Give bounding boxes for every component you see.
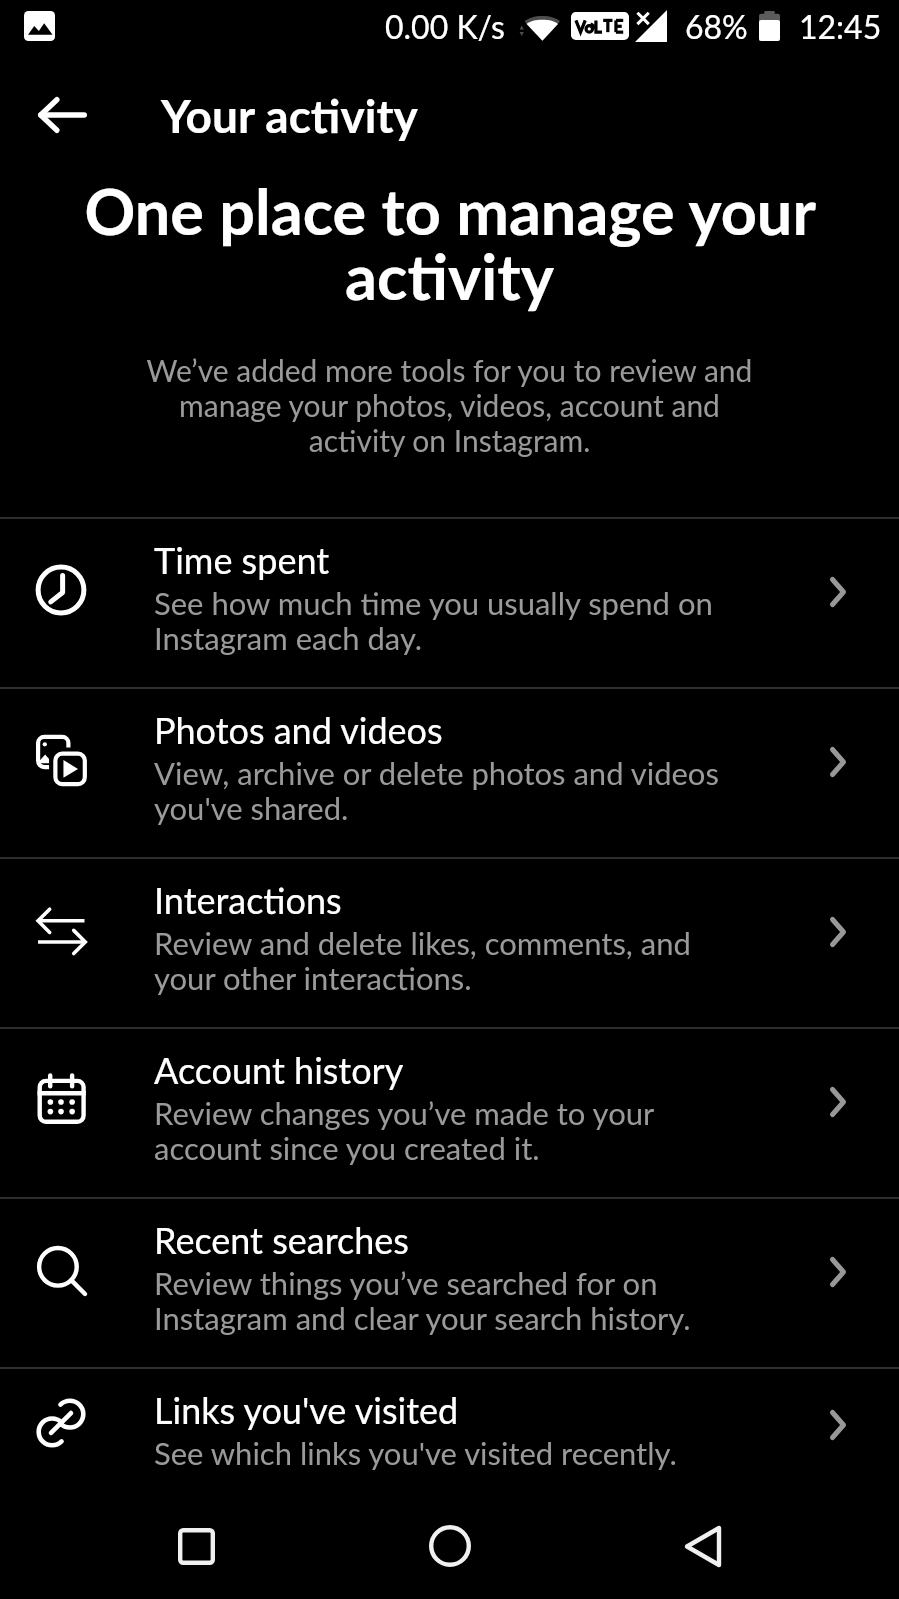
button[interactable]: Interactions xyxy=(0,859,899,1027)
staticText: Time spent xyxy=(154,538,330,581)
button[interactable]: Home xyxy=(393,1493,506,1599)
staticText: Links you've visited xyxy=(154,1388,459,1431)
staticText: We’ve added more tools for you to review… xyxy=(130,352,769,458)
button[interactable]: Time spent xyxy=(0,519,899,687)
staticText: Review things you’ve searched for on Ins… xyxy=(154,1264,691,1336)
staticText: Photos and videos xyxy=(154,708,443,751)
button[interactable]: Photos and videos xyxy=(0,689,899,857)
staticText: Interactions xyxy=(154,878,342,921)
button[interactable]: Recent searches xyxy=(0,1199,899,1367)
staticText: Recent searches xyxy=(154,1218,409,1261)
button[interactable]: Back xyxy=(12,74,112,156)
staticText: Your activity xyxy=(161,88,418,143)
staticText: 68% xyxy=(685,7,748,45)
staticText: View, archive or delete photos and video… xyxy=(154,754,719,826)
staticText: Account history xyxy=(154,1048,404,1091)
staticText: 0.00 K/s xyxy=(385,7,505,45)
staticText: 12:45 xyxy=(799,7,882,45)
button[interactable]: Links you've visited xyxy=(0,1369,899,1537)
button[interactable]: Account history xyxy=(0,1029,899,1197)
staticText: Review changes you’ve made to your accou… xyxy=(154,1094,655,1166)
button[interactable]: Recent apps xyxy=(140,1493,253,1599)
staticText: Review and delete likes, comments, and y… xyxy=(154,924,691,996)
staticText: See which links you've visited recently. xyxy=(154,1434,677,1471)
staticText: One place to manage your activity xyxy=(80,173,819,314)
button[interactable]: Back xyxy=(646,1493,759,1599)
staticText: See how much time you usually spend on I… xyxy=(154,584,713,656)
